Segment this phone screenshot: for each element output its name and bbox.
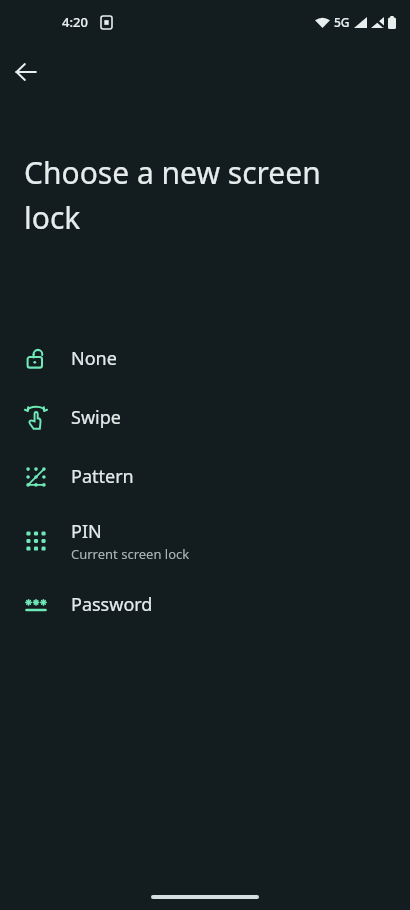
staticText: PIN (71, 519, 102, 544)
button[interactable]: Swipe (0, 388, 410, 447)
staticText: 5G (334, 14, 350, 30)
staticText: 4:20 (62, 13, 88, 31)
staticText: Current screen lock (71, 545, 190, 563)
button[interactable]: Password (0, 575, 410, 634)
staticText: None (71, 346, 117, 371)
staticText: Password (71, 592, 153, 617)
staticText: Choose a new screen lock (24, 152, 374, 237)
staticText: Pattern (71, 464, 134, 489)
button[interactable]: Back (4, 50, 48, 94)
button[interactable]: Pattern (0, 447, 410, 506)
button[interactable]: PIN (0, 506, 410, 575)
button[interactable]: None (0, 329, 410, 388)
staticText: Swipe (71, 405, 121, 430)
